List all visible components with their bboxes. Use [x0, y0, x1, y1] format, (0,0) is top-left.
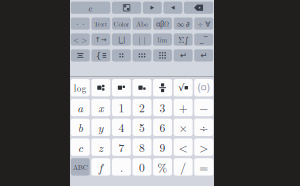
- staticText: √: [178, 82, 184, 93]
- button[interactable]: Superscript: [112, 79, 131, 96]
- staticText: ∞ ∂: [177, 18, 190, 29]
- button[interactable]: More: [71, 17, 90, 30]
- staticText: /: [180, 159, 186, 175]
- button[interactable]: Parentheses: [194, 79, 213, 96]
- button[interactable]: Three by three matrix: [153, 49, 172, 61]
- button[interactable]: Sum and integral: [174, 33, 193, 46]
- button[interactable]: 8: [132, 138, 151, 156]
- staticText: αβΩ: [156, 19, 169, 28]
- button[interactable]: 5: [132, 119, 151, 136]
- staticText: | |: [138, 34, 145, 45]
- button[interactable]: Infinity and partial: [174, 17, 193, 30]
- staticText: 0: [139, 159, 145, 175]
- staticText: Color: [113, 19, 129, 28]
- button[interactable]: Move right: [163, 2, 182, 14]
- staticText: 1: [118, 99, 124, 116]
- button[interactable]: Delete: [184, 2, 213, 14]
- button[interactable]: greater than: [194, 138, 213, 156]
- staticText: b: [78, 119, 83, 135]
- staticText: 5: [139, 119, 145, 135]
- button[interactable]: Square root: [174, 79, 193, 96]
- button[interactable]: Align: [71, 49, 90, 61]
- staticText: ABC: [73, 162, 88, 172]
- button[interactable]: times: [174, 119, 193, 136]
- staticText: ÷ ∀: [197, 18, 210, 29]
- button[interactable]: Three by one matrix: [132, 49, 151, 61]
- staticText: 7: [118, 139, 124, 155]
- staticText: Text: [94, 19, 108, 28]
- staticText: 2: [139, 99, 145, 116]
- button[interactable]: Fraction: [153, 79, 172, 96]
- staticText: c: [78, 139, 83, 155]
- staticText: ÷: [199, 119, 208, 135]
- button[interactable]: 6: [153, 119, 172, 136]
- staticText: 4: [118, 119, 124, 135]
- button[interactable]: b: [71, 119, 90, 136]
- button[interactable]: 0: [132, 158, 151, 176]
- button[interactable]: x: [91, 99, 110, 116]
- button[interactable]: minus: [194, 99, 213, 116]
- button[interactable]: ABC: [71, 158, 90, 176]
- staticText: _‾: [200, 35, 208, 44]
- staticText: ↵: [200, 50, 207, 60]
- button[interactable]: Move left: [143, 2, 162, 14]
- staticText: 8: [139, 139, 145, 155]
- button[interactable]: Abc: [132, 17, 151, 30]
- button[interactable]: Angle brackets: [71, 33, 90, 46]
- button[interactable]: plus: [174, 99, 193, 116]
- staticText: 6: [160, 119, 166, 135]
- button[interactable]: 9: [153, 138, 172, 156]
- button[interactable]: point: [112, 158, 131, 176]
- staticText: lim: [158, 35, 168, 44]
- button[interactable]: 7: [112, 138, 131, 156]
- staticText: c: [89, 1, 93, 14]
- button[interactable]: equals: [194, 158, 213, 176]
- button[interactable]: f: [91, 158, 110, 176]
- staticText: <: [179, 139, 188, 155]
- button[interactable]: Cases: [91, 49, 110, 61]
- button[interactable]: z: [91, 138, 110, 156]
- button[interactable]: 4: [112, 119, 131, 136]
- button[interactable]: 3: [153, 99, 172, 116]
- button[interactable]: c: [71, 138, 90, 156]
- button[interactable]: Subscript and superscript: [91, 79, 110, 96]
- button[interactable]: Return: [194, 49, 213, 61]
- staticText: 9: [160, 139, 166, 155]
- button[interactable]: Matrix: [112, 2, 141, 14]
- staticText: +: [179, 99, 188, 116]
- button[interactable]: Bars: [132, 33, 151, 46]
- staticText: Σ∫: [178, 34, 188, 45]
- button[interactable]: divide: [194, 119, 213, 136]
- button[interactable]: New line: [174, 49, 193, 61]
- button[interactable]: a: [71, 99, 90, 116]
- button[interactable]: Color: [112, 17, 131, 30]
- button[interactable]: Limit: [153, 33, 172, 46]
- button[interactable]: 1: [112, 99, 131, 116]
- staticText: < >: [73, 34, 87, 45]
- staticText: ×: [179, 119, 188, 135]
- button[interactable]: Over brace: [112, 33, 131, 46]
- button[interactable]: Vector: [91, 33, 110, 46]
- staticText: >: [199, 139, 208, 155]
- staticText: ↵: [180, 50, 187, 60]
- button[interactable]: less than: [174, 138, 193, 156]
- button[interactable]: log: [71, 79, 90, 96]
- staticText: ··: [74, 18, 86, 29]
- button[interactable]: slash: [174, 158, 193, 176]
- button[interactable]: Accent: [194, 33, 213, 46]
- button[interactable]: y: [91, 119, 110, 136]
- button[interactable]: Divide and for all: [194, 17, 213, 30]
- button[interactable]: Clipboard: [71, 2, 110, 14]
- button[interactable]: 2: [132, 99, 151, 116]
- button[interactable]: Subscript: [132, 79, 151, 96]
- staticText: log: [74, 81, 87, 94]
- button[interactable]: Two by one matrix: [112, 49, 131, 61]
- staticText: f: [99, 159, 103, 175]
- staticText: ): [206, 82, 210, 94]
- button[interactable]: Text: [91, 17, 110, 30]
- button[interactable]: percent: [153, 158, 172, 176]
- staticText: |⎵|: [118, 35, 125, 44]
- staticText: −: [199, 99, 208, 116]
- staticText: ↑→: [95, 35, 107, 44]
- button[interactable]: Greek letters: [153, 17, 172, 30]
